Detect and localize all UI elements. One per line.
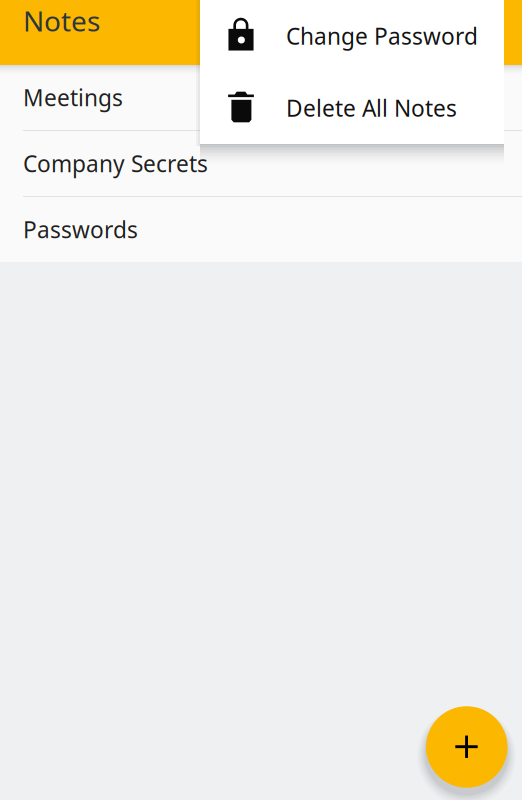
staticText: Passwords — [23, 214, 138, 244]
button[interactable]: Passwords — [0, 197, 522, 262]
staticText: Change Password — [286, 21, 478, 51]
button[interactable]: New note — [417, 699, 516, 800]
button[interactable]: Delete All Notes — [200, 72, 504, 144]
button[interactable]: Company Secrets — [0, 131, 522, 197]
staticText: Company Secrets — [23, 148, 208, 178]
button[interactable]: Meetings — [0, 65, 522, 131]
button[interactable]: Change Password — [200, 0, 504, 72]
staticText: Delete All Notes — [286, 93, 457, 123]
staticText: Meetings — [23, 82, 123, 112]
staticText: Notes — [23, 2, 100, 39]
